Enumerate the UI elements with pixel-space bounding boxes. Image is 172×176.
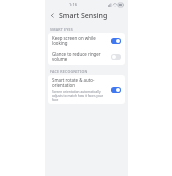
staticText: Glance to reduce ringer volume xyxy=(52,51,109,63)
button[interactable]: Glance to reduce ringer volume xyxy=(48,49,125,65)
button[interactable]: Off xyxy=(111,54,121,60)
staticText: Keep screen on while looking xyxy=(52,35,109,47)
button[interactable]: Keep screen on while looking xyxy=(48,33,125,49)
button[interactable]: On xyxy=(111,87,121,93)
staticText: SMART EYES xyxy=(50,27,73,32)
staticText: FACE RECOGNITION xyxy=(50,69,88,74)
staticText: Smart Sensing xyxy=(59,11,108,21)
button[interactable]: Smart rotate & auto-orientation xyxy=(48,75,125,104)
button[interactable]: Back xyxy=(48,11,57,20)
staticText: 1:16 xyxy=(69,2,77,7)
staticText: Smart rotate & auto-orientation xyxy=(52,77,109,89)
button[interactable]: On xyxy=(111,38,121,44)
staticText: Screen orientation automatically adjusts… xyxy=(52,90,109,102)
